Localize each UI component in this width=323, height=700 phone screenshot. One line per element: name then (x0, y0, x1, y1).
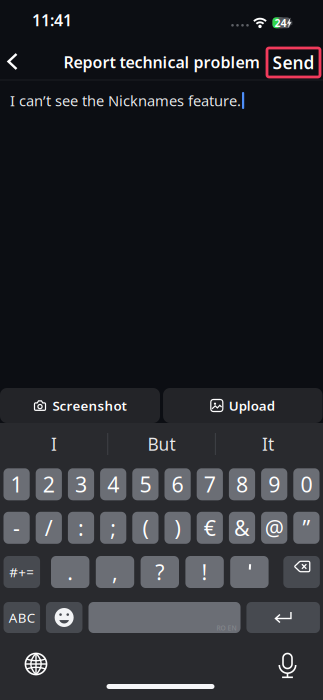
staticText: - (13, 514, 20, 542)
button[interactable]: But (111, 429, 211, 459)
staticText: 2 (43, 470, 55, 498)
staticText: 4 (107, 470, 119, 498)
staticText: : (78, 514, 84, 542)
staticText: I (51, 432, 57, 455)
button[interactable]: #+= (4, 556, 40, 588)
staticText: ( (142, 514, 148, 542)
button[interactable]: Next keyboard (24, 652, 48, 676)
button[interactable]: 0 (293, 468, 319, 500)
button[interactable]: Return (246, 602, 320, 633)
button[interactable]: Emoji (46, 602, 82, 633)
button[interactable]: 3 (68, 468, 94, 500)
staticText: It (262, 432, 274, 455)
button[interactable]: € (197, 512, 223, 544)
button[interactable]: 2 (36, 468, 62, 500)
staticText: & (234, 514, 250, 542)
button[interactable]: ABC (4, 602, 40, 633)
staticText: 11:41 (32, 9, 72, 31)
button[interactable]: ? (141, 556, 179, 588)
button[interactable]: , (96, 556, 134, 588)
button[interactable]: ) (164, 512, 191, 544)
staticText: I can’t see the Nicknames feature. (10, 91, 241, 110)
staticText: Report technical problem (63, 51, 259, 73)
staticText: ABC (9, 609, 35, 626)
staticText: , (112, 558, 118, 586)
button[interactable]: & (229, 512, 255, 544)
staticText: € (204, 514, 216, 542)
staticText: @ (265, 514, 284, 542)
button[interactable]: 6 (164, 468, 191, 500)
staticText: ; (110, 514, 116, 542)
staticText: ! (202, 558, 208, 586)
staticText: / (45, 514, 53, 542)
staticText: 6 (172, 470, 184, 498)
button[interactable]: Back (4, 51, 22, 71)
staticText: 0 (300, 470, 312, 498)
button[interactable]: @ (261, 512, 287, 544)
button[interactable]: Screenshot (0, 388, 160, 423)
button[interactable]: / (36, 512, 62, 544)
button[interactable]: I (4, 429, 104, 459)
button[interactable]: ( (132, 512, 158, 544)
button[interactable]: Delete (283, 556, 320, 588)
staticText: 7 (204, 470, 216, 498)
button[interactable]: . (51, 556, 89, 588)
button[interactable]: 9 (261, 468, 287, 500)
staticText: Send (272, 51, 314, 74)
staticText: ? (155, 558, 164, 586)
button[interactable]: 7 (197, 468, 223, 500)
button[interactable]: 1 (3, 468, 30, 500)
button[interactable]: Space (88, 602, 240, 633)
button[interactable]: : (68, 512, 94, 544)
button[interactable]: 5 (132, 468, 158, 500)
staticText: ) (175, 514, 181, 542)
staticText: 24 (275, 16, 287, 30)
staticText: Upload (229, 397, 275, 414)
staticText: 8 (236, 470, 248, 498)
button[interactable]: - (3, 512, 30, 544)
staticText: But (147, 432, 175, 455)
staticText: Screenshot (52, 397, 126, 414)
button[interactable]: ' (230, 556, 269, 588)
staticText: 5 (139, 470, 151, 498)
button[interactable]: ! (185, 556, 224, 588)
button[interactable]: Upload (163, 388, 323, 423)
staticText: 3 (75, 470, 87, 498)
staticText: RO EN (216, 624, 236, 632)
button[interactable]: 8 (229, 468, 255, 500)
button[interactable]: ; (100, 512, 126, 544)
button[interactable]: Send (267, 48, 320, 77)
staticText: 9 (268, 470, 280, 498)
button[interactable]: ” (293, 512, 319, 544)
button[interactable]: 4 (100, 468, 126, 500)
button[interactable]: Dictate (277, 652, 297, 679)
staticText: #+= (9, 563, 34, 581)
staticText: . (67, 558, 73, 586)
button[interactable]: It (218, 429, 318, 459)
staticText: ” (302, 514, 310, 542)
staticText: 1 (11, 470, 23, 498)
